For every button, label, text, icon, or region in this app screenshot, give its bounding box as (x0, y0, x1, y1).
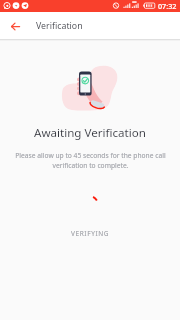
staticText: Verification (36, 20, 83, 32)
button[interactable]: Back (7, 18, 23, 34)
staticText: Awaiting Verification (34, 125, 146, 141)
staticText: VERIFYING (71, 229, 110, 238)
staticText: 07:32 (158, 1, 177, 11)
staticText: Please allow up to 45 seconds for the ph… (15, 151, 166, 170)
